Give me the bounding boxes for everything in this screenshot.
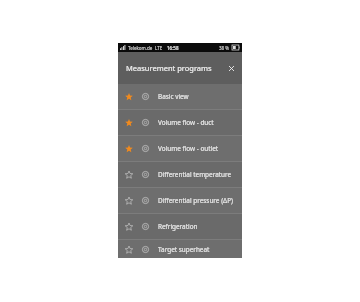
button[interactable]: Add favourite	[123, 244, 134, 255]
staticText: 16:58	[167, 45, 179, 51]
button[interactable]: Add favourite	[118, 214, 242, 239]
staticText: 38 %	[219, 45, 230, 51]
staticText: LTE	[155, 45, 163, 51]
button[interactable]: Add favourite	[123, 221, 134, 232]
button[interactable]: Remove favourite	[118, 136, 242, 161]
button[interactable]: Close	[225, 62, 237, 74]
button[interactable]: Info	[140, 169, 151, 180]
staticText: Target superheat	[158, 245, 210, 254]
button[interactable]: Remove favourite	[118, 84, 242, 109]
button[interactable]: Add favourite	[118, 162, 242, 187]
button[interactable]: Info	[140, 221, 151, 232]
staticText: Basic view	[158, 92, 189, 101]
button[interactable]: Info	[140, 91, 151, 102]
button[interactable]: Remove favourite	[123, 117, 134, 128]
button[interactable]: Add favourite	[118, 240, 242, 258]
button[interactable]: Add favourite	[123, 195, 134, 206]
button[interactable]: Add favourite	[118, 188, 242, 213]
button[interactable]: Info	[140, 244, 151, 255]
button[interactable]: Add favourite	[123, 169, 134, 180]
staticText: Refrigeration	[158, 222, 198, 231]
staticText: Telekom.de	[128, 45, 153, 51]
button[interactable]: Remove favourite	[118, 110, 242, 135]
staticText: Volume flow - duct	[158, 118, 214, 127]
staticText: Differential temperature (ΔT)	[158, 170, 242, 179]
button[interactable]: Remove favourite	[123, 91, 134, 102]
button[interactable]: Info	[140, 143, 151, 154]
button[interactable]: Remove favourite	[123, 143, 134, 154]
staticText: Measurement programs	[126, 63, 212, 73]
button[interactable]: Info	[140, 195, 151, 206]
staticText: Volume flow - outlet	[158, 144, 219, 153]
button[interactable]: Info	[140, 117, 151, 128]
staticText: Differential pressure (ΔP)	[158, 196, 233, 205]
